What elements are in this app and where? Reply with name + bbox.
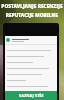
button[interactable] [7,77,55,83]
button[interactable] [7,65,55,71]
staticText: REPUTACIJE MOBILNE [0,12,64,19]
button[interactable] [6,36,57,44]
button[interactable] [7,71,55,77]
button[interactable] [7,47,55,53]
staticText: POSTAVLJANJE RECENZIJE [0,3,64,10]
button[interactable] [7,59,55,65]
button[interactable]: SAZNAJ VIŠE [5,91,57,100]
button[interactable] [7,83,55,89]
staticText: SAZNAJ VIŠE [19,93,44,98]
button[interactable] [7,53,55,59]
button[interactable] [7,89,55,95]
